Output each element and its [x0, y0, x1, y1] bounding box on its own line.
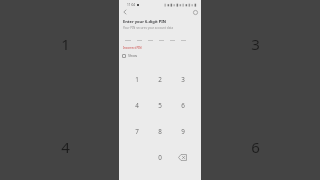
button[interactable]: 4	[126, 92, 148, 118]
staticText: 8	[158, 127, 162, 136]
staticText: Enter your 6-digit PIN	[123, 19, 167, 24]
staticText: 5	[158, 101, 162, 110]
staticText: Incorrect PIN	[123, 46, 142, 50]
button[interactable]: Help	[190, 7, 200, 17]
button[interactable]: 0	[148, 144, 171, 170]
staticText: Your PIN secures your account data	[123, 26, 174, 30]
button[interactable]: 2	[148, 66, 171, 92]
staticText: 6	[251, 137, 260, 157]
staticText: 9	[181, 127, 185, 136]
button[interactable]: 6	[171, 92, 194, 118]
button[interactable]: 3	[171, 66, 194, 92]
staticText: 0	[158, 153, 162, 162]
button[interactable]: 1	[126, 66, 148, 92]
staticText: 6	[181, 101, 185, 110]
button[interactable]: 8	[148, 118, 171, 144]
button[interactable]: 3	[245, 34, 265, 54]
button[interactable]: Backspace	[171, 144, 194, 170]
button[interactable]: 4	[55, 137, 75, 157]
button[interactable]: 7	[126, 118, 148, 144]
other: Backspace	[178, 154, 187, 161]
staticText: 3	[251, 34, 260, 54]
staticText: 4	[135, 101, 139, 110]
button[interactable]: Show	[120, 51, 140, 60]
staticText: 1	[135, 75, 139, 84]
button[interactable]: 1	[55, 34, 75, 54]
staticText: 1	[61, 34, 70, 54]
staticText: 3	[181, 75, 185, 84]
staticText: 4	[61, 137, 70, 157]
button[interactable]: 5	[148, 92, 171, 118]
staticText: 2	[158, 75, 162, 84]
staticText: 11:04	[127, 3, 136, 7]
button[interactable]: Back	[120, 7, 130, 17]
button[interactable]: 9	[171, 118, 194, 144]
staticText: Show	[128, 53, 138, 58]
staticText: 7	[135, 127, 139, 136]
button[interactable]: 6	[245, 137, 265, 157]
